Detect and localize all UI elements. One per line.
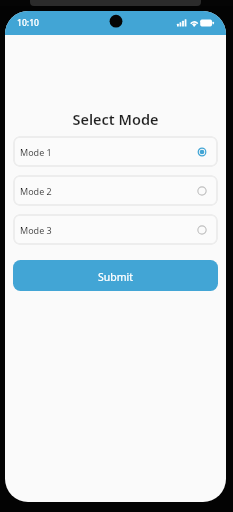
other: Not selected: [196, 224, 208, 236]
button[interactable]: Submit: [13, 260, 218, 291]
other: Not selected: [196, 185, 208, 197]
staticText: 10:10: [17, 17, 40, 29]
staticText: Mode 1: [20, 146, 52, 158]
staticText: Mode 3: [20, 224, 52, 236]
other: Selected: [196, 146, 208, 158]
staticText: Submit: [98, 270, 134, 284]
toggle[interactable]: Mode 2: [13, 175, 218, 206]
toggle[interactable]: Mode 1: [13, 136, 218, 167]
staticText: Select Mode: [5, 109, 226, 129]
staticText: Mode 2: [20, 185, 52, 197]
toggle[interactable]: Mode 3: [13, 214, 218, 245]
